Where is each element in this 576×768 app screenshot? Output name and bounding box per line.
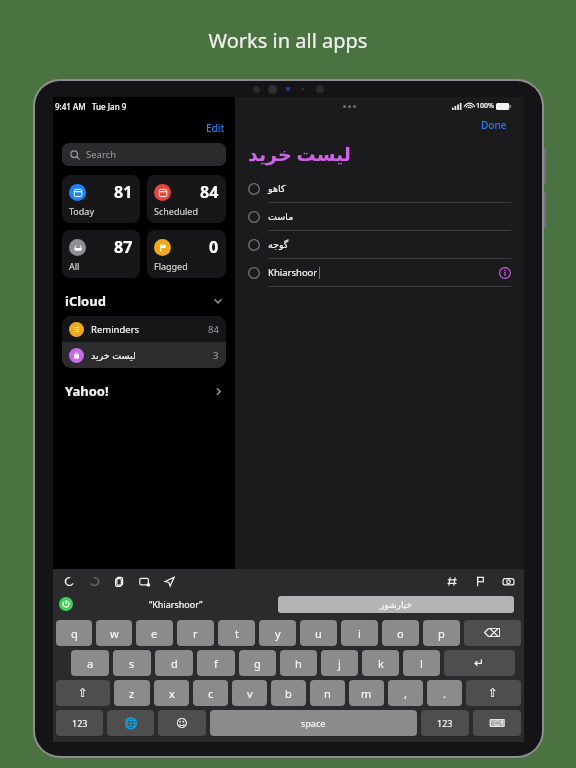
button[interactable]: n	[310, 680, 345, 706]
button[interactable]: ⌨	[473, 710, 521, 736]
button[interactable]: Edit	[202, 117, 229, 139]
button[interactable]: ⌫	[464, 620, 521, 646]
staticText: 84	[200, 181, 219, 203]
button[interactable]: Location	[161, 573, 177, 589]
button[interactable]: d	[155, 650, 193, 676]
staticText: y	[275, 626, 281, 641]
staticText: n	[324, 686, 331, 701]
button[interactable]: q	[56, 620, 92, 646]
button[interactable]: کاهو	[248, 175, 511, 203]
button[interactable]: 0	[147, 230, 226, 278]
button[interactable]: y	[259, 620, 296, 646]
button[interactable]: Tag	[444, 573, 460, 589]
button[interactable]: 123	[421, 710, 469, 736]
button[interactable]: 81	[62, 175, 140, 223]
button[interactable]: Flag	[472, 573, 488, 589]
staticText: a	[87, 656, 94, 671]
button[interactable]: t	[218, 620, 255, 646]
staticText: h	[295, 656, 302, 671]
button[interactable]: “Khiarshoor”	[73, 598, 278, 610]
button[interactable]: ⇧	[56, 680, 110, 706]
staticText: ⇧	[78, 686, 89, 700]
staticText: e	[151, 626, 158, 641]
staticText: گوجه	[268, 239, 289, 250]
button[interactable]: e	[136, 620, 173, 646]
button[interactable]: space	[210, 710, 417, 736]
staticText: 87	[114, 236, 133, 258]
button[interactable]: f	[197, 650, 235, 676]
button[interactable]: Camera	[500, 573, 516, 589]
staticText: space	[301, 717, 326, 729]
button[interactable]: g	[239, 650, 276, 676]
staticText: ⇧	[488, 686, 499, 700]
staticText: Search	[86, 148, 117, 161]
staticText: ↵	[474, 656, 485, 670]
button[interactable]: 🌐	[107, 710, 154, 736]
button[interactable]: Redo	[86, 573, 102, 589]
staticText: iCloud	[65, 292, 106, 310]
button[interactable]: 87	[62, 230, 140, 278]
button[interactable]: گوجه	[248, 231, 511, 259]
staticText: “Khiarshoor”	[149, 598, 203, 610]
staticText: g	[254, 656, 261, 671]
staticText: w	[110, 626, 119, 641]
button[interactable]: Search	[62, 143, 226, 166]
button[interactable]: iCloud	[53, 290, 235, 316]
button[interactable]: Yahoo!	[53, 378, 235, 404]
button[interactable]: Undo	[61, 573, 77, 589]
staticText: Edit	[206, 121, 225, 135]
staticText: q	[71, 626, 78, 641]
staticText: ☺	[176, 717, 188, 730]
staticText: k	[378, 656, 384, 671]
staticText: 9:41 AM	[55, 101, 86, 112]
staticText: Flagged	[154, 260, 188, 272]
button[interactable]: c	[193, 680, 228, 706]
button[interactable]: Paste	[111, 573, 127, 589]
button[interactable]: z	[114, 680, 150, 706]
button[interactable]: b	[271, 680, 306, 706]
button[interactable]: u	[300, 620, 337, 646]
button[interactable]: j	[321, 650, 358, 676]
button[interactable]: o	[382, 620, 419, 646]
button[interactable]: .	[427, 680, 462, 706]
button[interactable]: m	[349, 680, 384, 706]
staticText: Tue Jan 9	[92, 101, 127, 112]
staticText: ماست	[268, 211, 294, 222]
button[interactable]: v	[232, 680, 267, 706]
staticText: z	[129, 686, 135, 701]
button[interactable]: ↵	[444, 650, 515, 676]
button[interactable]: r	[177, 620, 214, 646]
button[interactable]: Reminders	[62, 316, 226, 342]
button[interactable]: Dictation	[59, 597, 73, 611]
button[interactable]: Scan	[136, 573, 152, 589]
button[interactable]: Done	[477, 115, 511, 135]
staticText: j	[338, 656, 341, 671]
button[interactable]: ,	[388, 680, 423, 706]
staticText: o	[397, 626, 404, 641]
button[interactable]: x	[154, 680, 189, 706]
button[interactable]: خیارشور	[278, 596, 514, 613]
button[interactable]: i	[341, 620, 378, 646]
button[interactable]: 84	[147, 175, 226, 223]
button[interactable]: لیست خرید	[62, 342, 226, 368]
button[interactable]: p	[423, 620, 460, 646]
staticText: Yahoo!	[65, 382, 109, 400]
button[interactable]: 123	[56, 710, 103, 736]
button[interactable]: ⇧	[466, 680, 521, 706]
button[interactable]: a	[71, 650, 109, 676]
staticText: 84	[208, 323, 219, 336]
staticText: 123	[72, 717, 88, 729]
staticText: 3	[213, 349, 219, 362]
button[interactable]: Khiarshoor	[248, 259, 511, 287]
button[interactable]: w	[96, 620, 132, 646]
button[interactable]: s	[113, 650, 151, 676]
button[interactable]: k	[362, 650, 399, 676]
button[interactable]: l	[403, 650, 440, 676]
staticText: کاهو	[268, 183, 286, 194]
staticText: Works in all apps	[0, 27, 576, 54]
button[interactable]: ماست	[248, 203, 511, 231]
button[interactable]: Details	[499, 267, 511, 279]
button[interactable]: ☺	[158, 710, 206, 736]
staticText: p	[438, 626, 445, 641]
button[interactable]: h	[280, 650, 317, 676]
